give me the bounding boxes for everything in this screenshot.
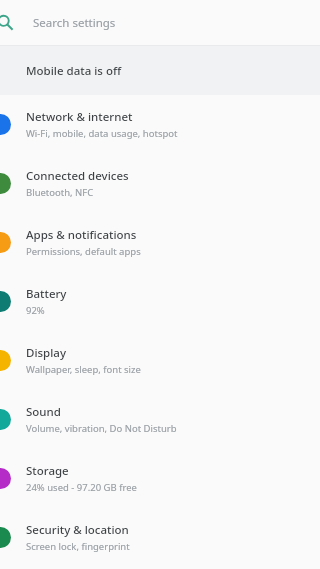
button[interactable]: Connected devices — [0, 154, 320, 213]
staticText: Battery — [26, 286, 67, 302]
staticText: Mobile data is off — [26, 63, 122, 79]
staticText: Wallpaper, sleep, font size — [26, 363, 141, 376]
staticText: Sound — [26, 404, 61, 420]
staticText: Storage — [26, 463, 69, 479]
staticText: Permissions, default apps — [26, 245, 141, 258]
button[interactable]: Battery — [0, 272, 320, 331]
staticText: 92% — [26, 304, 45, 317]
button[interactable]: Mobile data is off — [0, 46, 320, 95]
staticText: Wi-Fi, mobile, data usage, hotspot — [26, 127, 178, 140]
button[interactable]: Apps & notifications — [0, 213, 320, 272]
staticText: Bluetooth, NFC — [26, 186, 94, 199]
button[interactable]: Security & location — [0, 508, 320, 567]
button[interactable]: Network & internet — [0, 95, 320, 154]
button[interactable]: Storage — [0, 449, 320, 508]
button[interactable]: Display — [0, 331, 320, 390]
staticText: Screen lock, fingerprint — [26, 540, 130, 553]
staticText: Search settings — [33, 15, 116, 31]
staticText: Connected devices — [26, 168, 129, 184]
staticText: Network & internet — [26, 109, 133, 125]
staticText: 24% used - 97.20 GB free — [26, 481, 137, 494]
button[interactable]: Search — [0, 0, 320, 45]
other: Search — [0, 14, 13, 31]
staticText: Apps & notifications — [26, 227, 137, 243]
staticText: Volume, vibration, Do Not Disturb — [26, 422, 177, 435]
button[interactable]: Sound — [0, 390, 320, 449]
staticText: Security & location — [26, 522, 129, 538]
staticText: Display — [26, 345, 66, 361]
